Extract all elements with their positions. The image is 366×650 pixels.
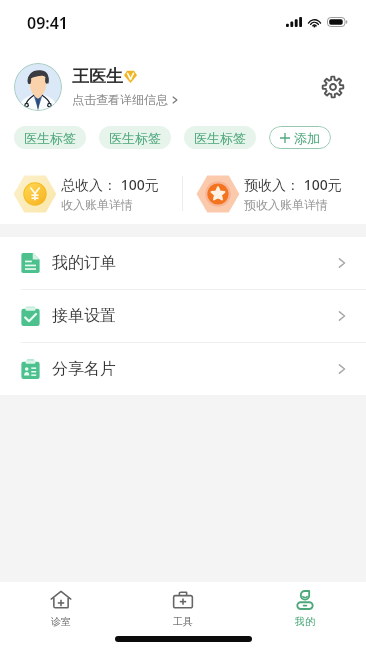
- button[interactable]: 预收入： 100元: [183, 163, 366, 224]
- button[interactable]: Doctor avatar: [14, 63, 62, 111]
- button[interactable]: 添加: [269, 126, 331, 149]
- button[interactable]: 分享名片: [0, 343, 366, 395]
- staticText: 医生标签: [109, 130, 161, 146]
- staticText: 医生标签: [24, 130, 76, 146]
- staticText: 收入账单详情: [61, 197, 133, 212]
- button[interactable]: 总收入： 100元: [0, 163, 182, 224]
- button[interactable]: 我的订单: [0, 237, 366, 289]
- button[interactable]: 我的: [244, 582, 366, 631]
- button[interactable]: 诊室: [0, 582, 122, 631]
- staticText: 添加: [294, 130, 320, 146]
- staticText: 工具: [173, 615, 193, 628]
- button[interactable]: 医生标签: [99, 126, 171, 149]
- button[interactable]: 医生标签: [184, 126, 256, 149]
- button[interactable]: Settings: [316, 70, 350, 104]
- button[interactable]: 工具: [122, 582, 244, 631]
- button[interactable]: 医生标签: [14, 126, 86, 149]
- staticText: 点击查看详细信息: [72, 92, 168, 107]
- staticText: 预收入： 100元: [244, 175, 342, 194]
- staticText: 医生标签: [194, 130, 246, 146]
- staticText: 我的订单: [52, 253, 116, 273]
- staticText: 接单设置: [52, 306, 116, 326]
- staticText: 预收入账单详情: [244, 197, 328, 212]
- staticText: 诊室: [51, 615, 71, 628]
- staticText: 09:41: [27, 12, 69, 34]
- staticText: 王医生: [72, 66, 123, 87]
- button[interactable]: 接单设置: [0, 290, 366, 342]
- staticText: 我的: [295, 615, 315, 628]
- staticText: 总收入： 100元: [61, 175, 159, 194]
- staticText: 分享名片: [52, 359, 116, 379]
- button[interactable]: 王医生: [72, 66, 316, 107]
